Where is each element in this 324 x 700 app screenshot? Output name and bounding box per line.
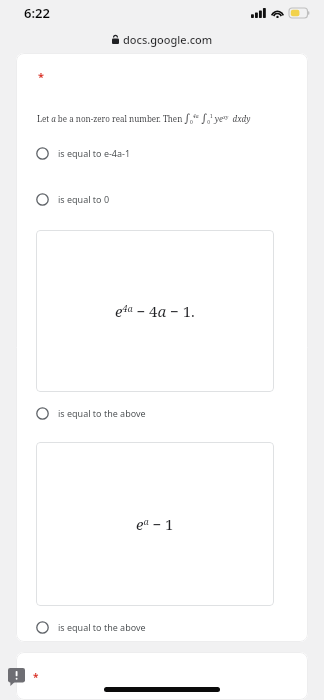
staticText: is equal to 0: [58, 193, 110, 205]
staticText: is equal to the above: [58, 407, 146, 419]
staticText: e4a − 4a − 1.: [115, 301, 195, 321]
staticText: ea − 1: [136, 514, 174, 534]
button[interactable]: e4a − 4a − 1.: [36, 230, 274, 392]
staticText: Let a be a non-zero real number. Then ∫0…: [37, 110, 251, 126]
button[interactable]: is equal to e-4a-1: [16, 140, 308, 166]
button[interactable]: ea − 1: [36, 442, 274, 606]
staticText: *: [38, 69, 44, 84]
button[interactable]: docs.google.com: [0, 26, 324, 53]
button[interactable]: Required question warning: [8, 668, 25, 686]
staticText: docs.google.com: [123, 32, 213, 47]
button[interactable]: is equal to the above: [16, 614, 308, 640]
staticText: is equal to e-4a-1: [58, 147, 131, 159]
staticText: *: [33, 670, 39, 684]
button[interactable]: is equal to the above: [16, 400, 308, 426]
staticText: is equal to the above: [58, 621, 146, 633]
staticText: 6:22: [24, 4, 50, 22]
button[interactable]: is equal to 0: [16, 186, 308, 212]
